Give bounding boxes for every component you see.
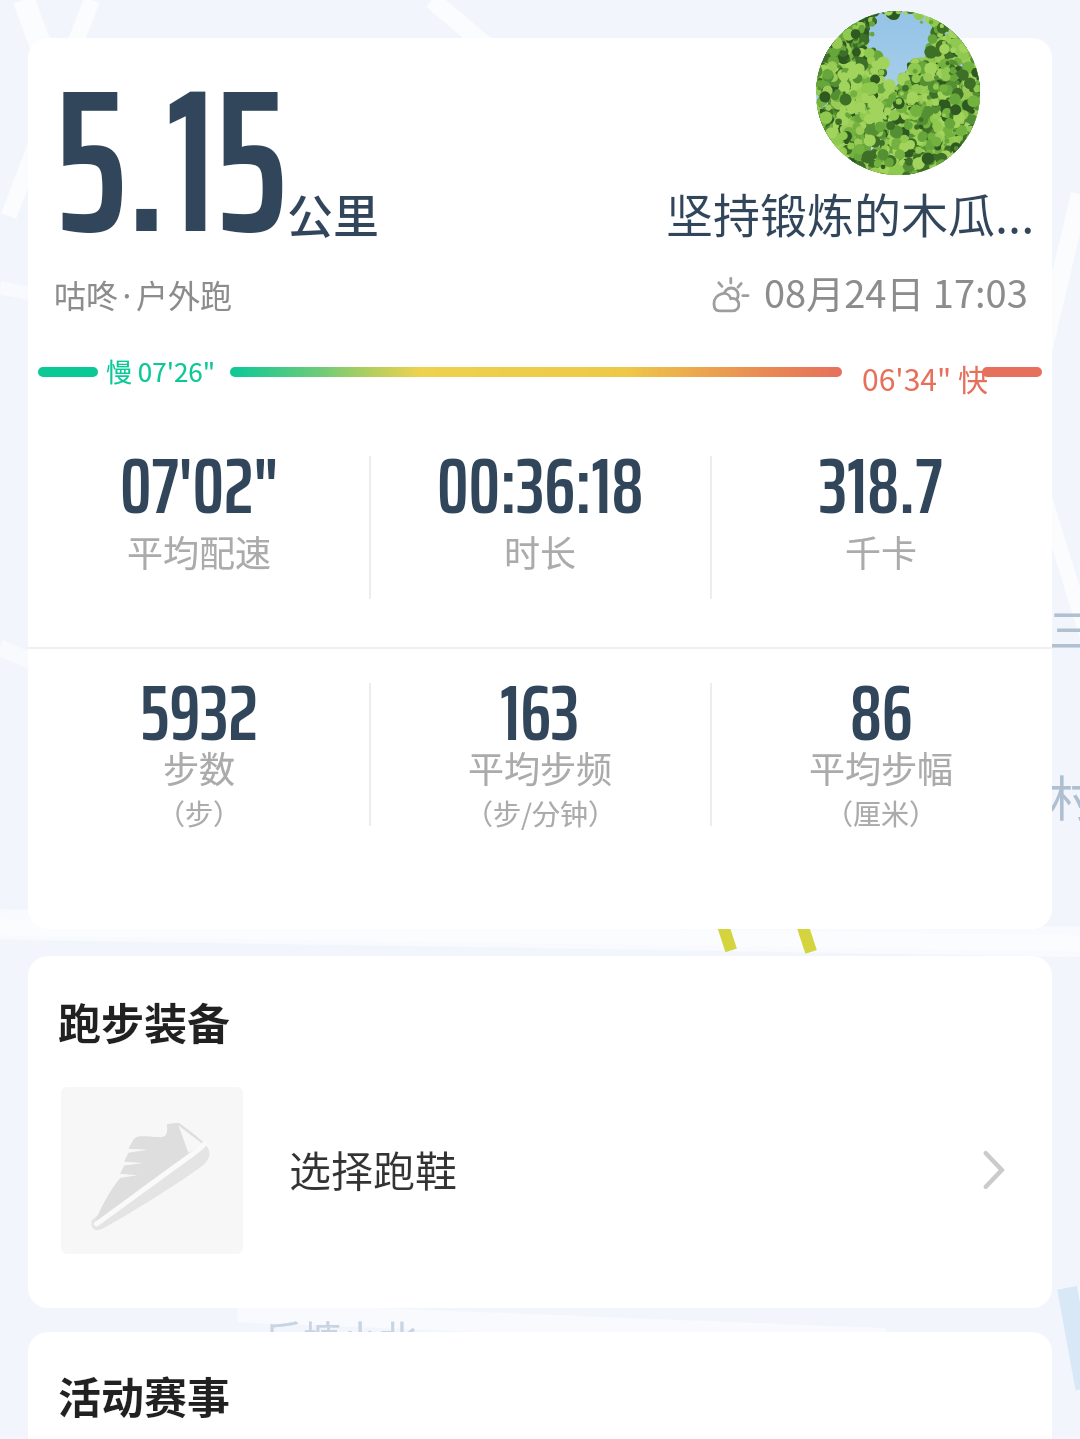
staticText: 318.7 [819, 423, 943, 547]
staticText: 06'34" 快 [862, 356, 988, 399]
staticText: 三环村 [1049, 596, 1080, 660]
staticText: 平均配速 [127, 525, 272, 577]
staticText: 千卡 [845, 525, 918, 577]
staticText: 步数 [163, 741, 236, 793]
staticText: 活动赛事 [58, 1364, 230, 1426]
staticText: 00:36:18 [437, 423, 644, 547]
staticText: 咕咚·户外跑 [54, 271, 232, 317]
staticText: 5932 [140, 650, 258, 774]
staticText: （步/分钟） [465, 793, 616, 834]
staticText: 时长 [504, 525, 577, 577]
staticText: 坚持锻炼的木瓜... [666, 178, 1035, 246]
staticText: 5.15 [55, 2, 287, 320]
staticText: 86 [850, 650, 913, 774]
staticText: 慢 07'26" [106, 352, 216, 390]
staticText: （步） [157, 793, 242, 834]
staticText: 07'02" [120, 423, 279, 547]
button[interactable]: User profile photo [816, 11, 980, 175]
staticText: 平均步频 [468, 741, 613, 793]
staticText: 后塘小北 [265, 1309, 418, 1364]
button[interactable] [28, 1060, 1052, 1280]
staticText: 跑步装备 [58, 990, 230, 1052]
staticText: 163 [500, 650, 580, 774]
staticText: 公里 [287, 180, 379, 247]
staticText: 村 [1049, 760, 1080, 830]
staticText: （厘米） [825, 793, 938, 834]
staticText: 平均步幅 [809, 741, 954, 793]
staticText: 08月24日 17:03 [764, 264, 1028, 319]
staticText: 选择跑鞋 [289, 1138, 458, 1199]
